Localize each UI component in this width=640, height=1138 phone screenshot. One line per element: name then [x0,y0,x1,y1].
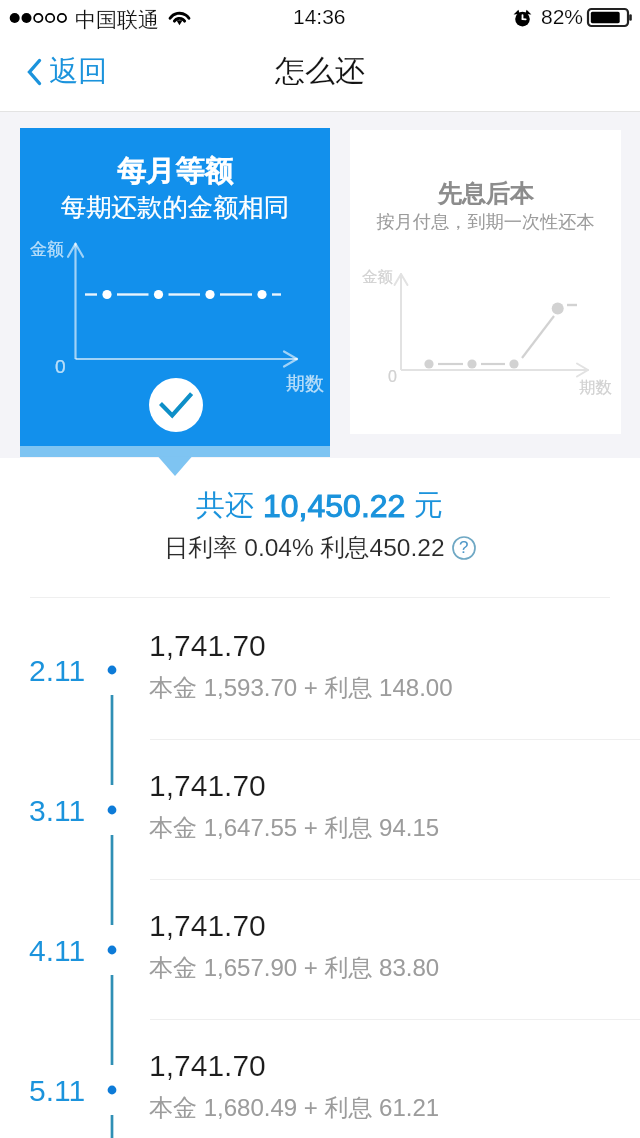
staticText: 每期还款的金额相同 [20,192,330,224]
button[interactable]: 帮助 [451,535,477,561]
staticText: 共还 [196,487,263,524]
button[interactable]: 3.11 [0,740,640,880]
button[interactable]: 返回 [0,45,125,98]
staticText: 10,450.22 [263,488,406,524]
staticText: 5.11 [29,1074,86,1108]
staticText: 4.11 [29,934,86,968]
staticText: 本金 1,647.55 + 利息 94.15 [149,813,440,843]
staticText: 日利率 0.04% 利息450.22 [164,532,445,563]
button[interactable]: 4.11 [0,880,640,1020]
button[interactable]: 5.11 [0,1020,640,1138]
button[interactable]: 先息后本 [350,130,621,434]
staticText: 1,741.70 [149,629,266,663]
staticText: 返回 [49,53,107,90]
staticText: 0 [388,368,397,386]
staticText: 怎么还 [275,52,365,90]
staticText: 0 [55,356,66,377]
staticText: 3.11 [29,794,86,828]
staticText: 1,741.70 [149,769,266,803]
staticText: ? [459,538,469,557]
staticText: 期数 [579,377,612,398]
staticText: 按月付息，到期一次性还本 [350,210,621,233]
staticText: 82% [541,5,584,28]
staticText: 金额 [30,239,64,260]
button[interactable]: 每月等额 [20,128,330,446]
button[interactable]: 2.11 [0,600,640,740]
staticText: 每月等额 [20,153,330,190]
staticText: 1,741.70 [149,909,266,943]
staticText: 期数 [286,372,324,396]
staticText: 14:36 [293,5,346,28]
staticText: 本金 1,680.49 + 利息 61.21 [149,1093,440,1123]
staticText: 中国联通 [75,7,159,33]
staticText: 1,741.70 [149,1049,266,1083]
staticText: 元 [406,487,444,524]
staticText: 2.11 [29,654,86,688]
staticText: 本金 1,657.90 + 利息 83.80 [149,953,440,983]
staticText: 金额 [362,267,393,287]
staticText: 本金 1,593.70 + 利息 148.00 [149,673,453,703]
staticText: 先息后本 [350,179,621,209]
